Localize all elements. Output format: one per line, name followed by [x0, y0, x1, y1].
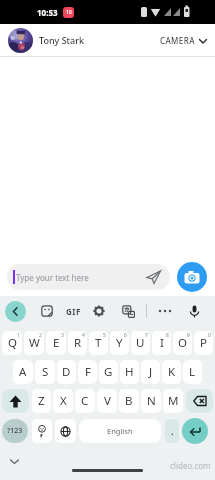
staticText: W [29, 335, 40, 351]
staticText: C [81, 393, 89, 409]
staticText: H [125, 364, 134, 380]
button[interactable]: X [53, 389, 73, 413]
button[interactable]: GIF [66, 300, 81, 322]
staticText: X [60, 393, 67, 409]
staticText: A [19, 364, 27, 380]
button[interactable]: Y [110, 331, 129, 355]
button[interactable]: Z [32, 389, 51, 413]
button[interactable]: U [131, 331, 150, 355]
staticText: D [62, 364, 71, 380]
button[interactable]: Q [2, 331, 22, 355]
staticText: P [200, 335, 207, 351]
button[interactable] [2, 389, 29, 413]
staticText: O [178, 335, 187, 351]
staticText: M [168, 393, 179, 409]
staticText: English [107, 426, 133, 436]
staticText: S [42, 364, 49, 380]
button[interactable]: W [24, 331, 44, 355]
staticText: V [104, 393, 111, 409]
button[interactable] [5, 301, 26, 322]
staticText: 0 [208, 332, 211, 339]
staticText: N [147, 393, 156, 409]
button[interactable]: Type your text here [7, 264, 170, 290]
button[interactable] [55, 419, 76, 443]
button[interactable]: J [141, 360, 160, 384]
staticText: R [74, 335, 82, 351]
staticText: L [189, 364, 196, 380]
staticText: U [136, 335, 145, 351]
button[interactable]: S [35, 360, 55, 384]
button[interactable] [186, 389, 213, 413]
staticText: E [53, 335, 60, 351]
button[interactable] [154, 300, 176, 322]
button[interactable]: B [119, 389, 139, 413]
staticText: Y [116, 335, 123, 351]
staticText: F [85, 364, 91, 380]
staticText: J [149, 364, 153, 380]
button[interactable]: L [183, 360, 202, 384]
button[interactable]: K [162, 360, 181, 384]
button[interactable] [88, 300, 110, 322]
button[interactable]: P [194, 331, 213, 355]
staticText: 5 [103, 332, 106, 339]
staticText: 8 [166, 332, 169, 339]
button[interactable]: English [79, 419, 161, 443]
staticText: K [168, 364, 176, 380]
staticText: CAMERA [160, 35, 195, 46]
button[interactable]: O [173, 331, 192, 355]
button[interactable]: G [99, 360, 118, 384]
button[interactable]: N [141, 389, 161, 413]
button[interactable]: T [89, 331, 108, 355]
staticText: G [104, 364, 113, 380]
staticText: 2 [39, 332, 42, 339]
staticText: Z [38, 393, 45, 409]
staticText: B [125, 393, 133, 409]
staticText: 3 [61, 332, 64, 339]
button[interactable]: R [68, 331, 87, 355]
staticText: clideo.com [170, 460, 211, 471]
button[interactable]: H [120, 360, 139, 384]
staticText: 9 [187, 332, 190, 339]
button[interactable]: D [57, 360, 76, 384]
button[interactable]: ?123 [2, 419, 28, 443]
staticText: I [160, 335, 164, 351]
button[interactable] [177, 262, 207, 292]
button[interactable] [8, 28, 33, 53]
staticText: Tony Stark [39, 34, 85, 46]
staticText: T [95, 335, 102, 351]
staticText: Q [8, 335, 17, 351]
staticText: 10 [66, 9, 72, 16]
button[interactable]: C [75, 389, 95, 413]
button[interactable]: V [97, 389, 117, 413]
button[interactable]: F [78, 360, 97, 384]
staticText: 1 [17, 332, 20, 339]
staticText: Type your text here [16, 272, 89, 283]
button[interactable] [183, 300, 205, 322]
button[interactable]: E [46, 331, 66, 355]
button[interactable]: I [152, 331, 171, 355]
staticText: 10:53 [37, 7, 58, 18]
button[interactable]: . [165, 419, 179, 443]
staticText: 7 [145, 332, 148, 339]
button[interactable]: A [13, 360, 33, 384]
staticText: 4 [82, 332, 85, 339]
staticText: . [171, 425, 174, 437]
button[interactable]: CAMERA [160, 35, 207, 46]
button[interactable] [36, 300, 58, 322]
staticText: ?123 [7, 426, 23, 436]
staticText: GIF [66, 306, 81, 317]
button[interactable] [182, 418, 208, 444]
button[interactable] [117, 300, 139, 322]
staticText: 6 [124, 332, 127, 339]
button[interactable]: M [163, 389, 183, 413]
button[interactable] [32, 419, 52, 443]
button[interactable] [72, 469, 143, 472]
